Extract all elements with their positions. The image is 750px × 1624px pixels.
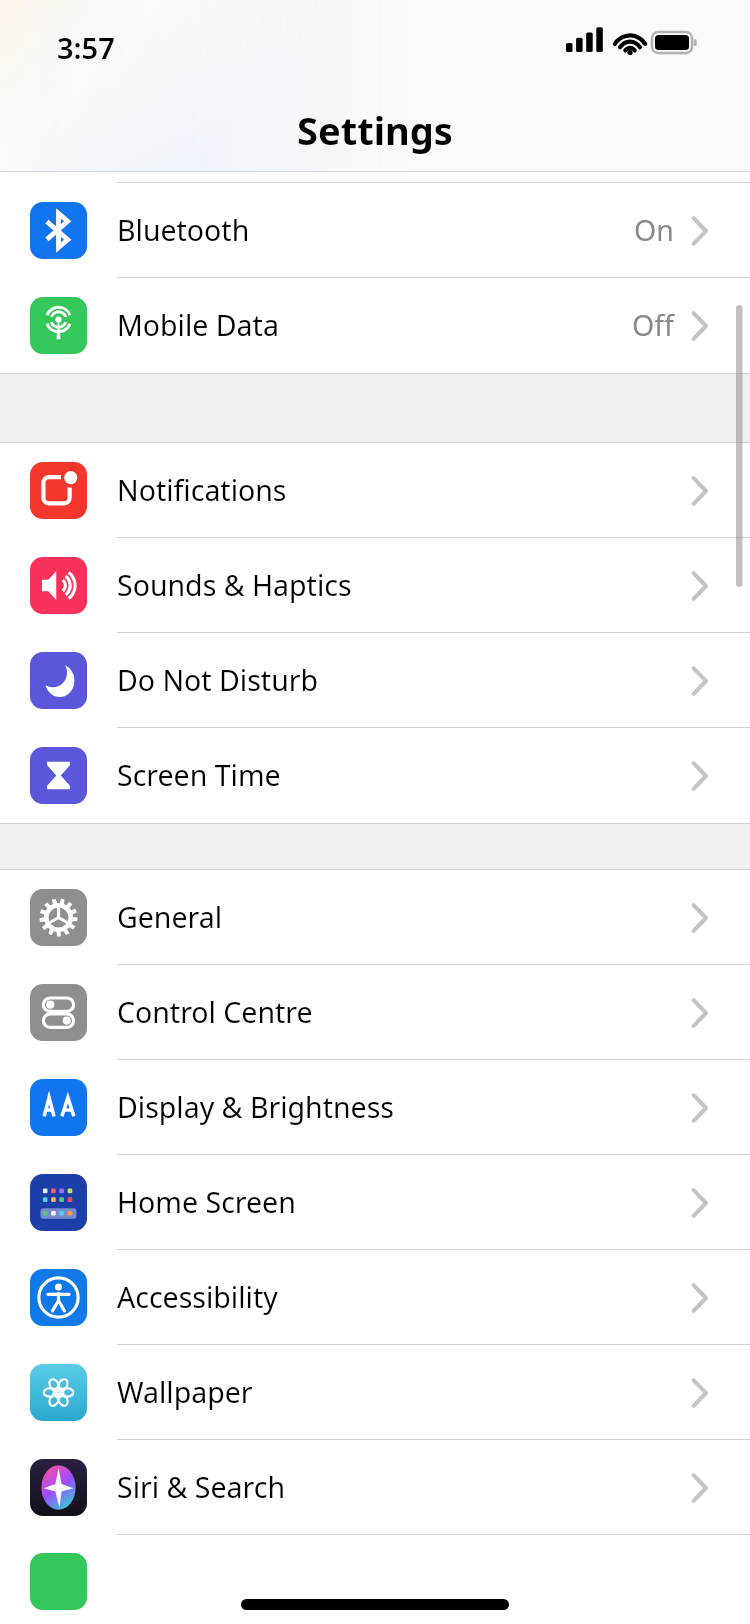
staticText: Home Screen [117, 1183, 296, 1222]
staticText: Screen Time [117, 756, 281, 795]
button[interactable]: Display & Brightness [0, 1060, 750, 1155]
button[interactable]: General [0, 870, 750, 965]
staticText: Sounds & Haptics [117, 566, 352, 605]
button[interactable]: Mobile Data [0, 278, 750, 373]
staticText: Mobile Data [117, 306, 279, 345]
button[interactable]: Control Centre [0, 965, 750, 1060]
staticText: Control Centre [117, 993, 313, 1032]
staticText: Wallpaper [117, 1373, 253, 1412]
staticText: On [634, 211, 674, 250]
staticText: General [117, 898, 223, 937]
staticText: Bluetooth [117, 211, 250, 250]
staticText: Display & Brightness [117, 1088, 394, 1127]
button[interactable]: Screen Time [0, 728, 750, 823]
button[interactable]: Notifications [0, 443, 750, 538]
button[interactable]: Home Screen [0, 1155, 750, 1250]
staticText: Accessibility [117, 1278, 278, 1317]
staticText: Do Not Disturb [117, 661, 319, 700]
button[interactable]: Bluetooth [0, 183, 750, 278]
staticText: 3:57 [57, 28, 115, 67]
button[interactable]: Sounds & Haptics [0, 538, 750, 633]
button[interactable]: Accessibility [0, 1250, 750, 1345]
staticText: Notifications [117, 471, 287, 510]
staticText: Settings [297, 104, 453, 156]
button[interactable]: Siri & Search [0, 1440, 750, 1535]
staticText: Off [632, 306, 674, 345]
staticText: Siri & Search [117, 1468, 286, 1507]
button[interactable]: Wallpaper [0, 1345, 750, 1440]
button[interactable]: Do Not Disturb [0, 633, 750, 728]
